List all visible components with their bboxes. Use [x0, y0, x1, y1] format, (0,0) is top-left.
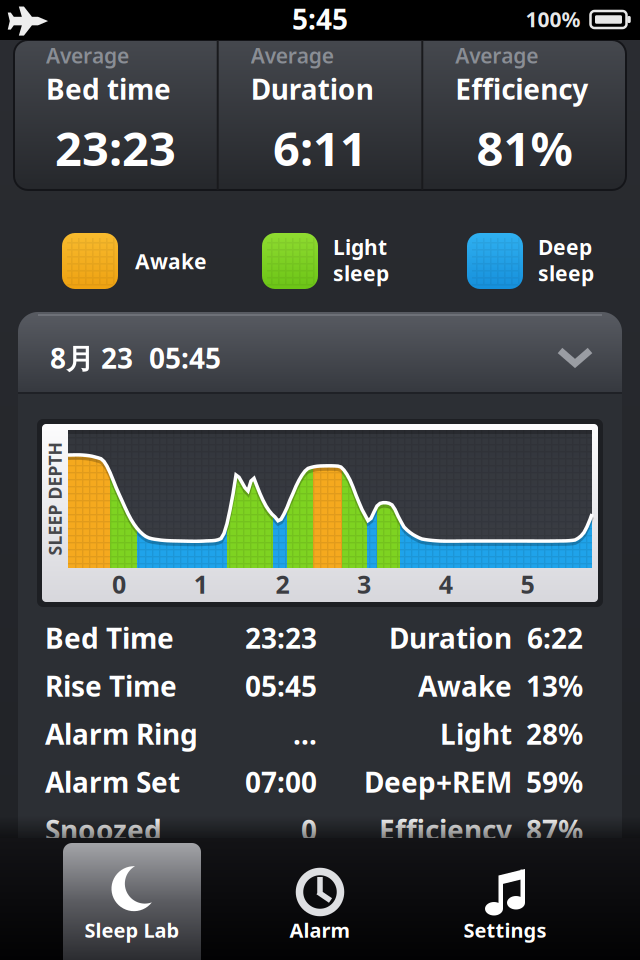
staticText: 23:23 — [245, 619, 317, 657]
staticText: Average — [251, 41, 334, 70]
staticText: Rise Time — [45, 667, 177, 705]
staticText: Settings — [463, 916, 546, 944]
staticText: Duration — [389, 619, 512, 657]
staticText: SLEEP DEPTH — [0, 487, 111, 511]
staticText: Awake — [418, 667, 512, 705]
button[interactable]: Sleep Lab — [63, 838, 201, 960]
button[interactable]: Alarm — [250, 838, 390, 960]
staticText: 05:45 — [245, 667, 317, 705]
staticText: Bed Time — [45, 619, 174, 657]
staticText: 13% — [526, 667, 583, 705]
staticText: Alarm — [289, 916, 350, 944]
staticText: 0 — [301, 811, 317, 849]
staticText: Efficiency — [455, 70, 588, 108]
staticText: 07:00 — [245, 763, 317, 801]
staticText: 3 — [357, 567, 371, 601]
staticText: Deep sleep — [538, 234, 594, 286]
button[interactable]: Settings — [430, 838, 580, 960]
staticText: Efficiency — [379, 811, 512, 849]
staticText: Snoozed — [45, 811, 162, 849]
staticText: 81% — [477, 116, 573, 180]
staticText: Duration — [251, 70, 374, 108]
staticText: 05:45 — [149, 339, 221, 377]
staticText: Deep+REM — [364, 763, 512, 801]
staticText: 28% — [526, 715, 583, 753]
staticText: Alarm Set — [45, 763, 180, 801]
staticText: 1 — [194, 567, 208, 601]
staticText: Alarm Ring — [45, 715, 198, 753]
staticText: Light — [440, 715, 512, 753]
staticText: Sleep Lab — [84, 916, 179, 944]
staticText: 0 — [112, 567, 126, 601]
staticText: Average — [46, 41, 129, 70]
staticText: 4 — [439, 567, 453, 601]
staticText: 8月 23 — [50, 339, 133, 377]
staticText: 2 — [275, 567, 289, 601]
staticText: Average — [455, 41, 538, 70]
staticText: 100% — [525, 5, 580, 33]
staticText: 5:45 — [292, 0, 348, 38]
staticText: Awake — [135, 247, 207, 275]
staticText: 6:22 — [527, 619, 583, 657]
staticText: 87% — [526, 811, 583, 849]
staticText: 5 — [520, 567, 534, 601]
staticText: 23:23 — [55, 116, 176, 180]
button[interactable]: Collapse day details — [18, 312, 622, 394]
staticText: ... — [293, 715, 317, 753]
staticText: 6:11 — [273, 116, 367, 180]
staticText: Bed time — [46, 70, 171, 108]
staticText: 59% — [526, 763, 583, 801]
staticText: Light sleep — [333, 234, 389, 286]
